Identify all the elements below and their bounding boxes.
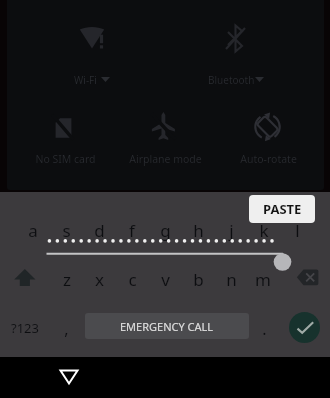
button[interactable]: PASTE xyxy=(249,195,315,223)
button[interactable]: . xyxy=(248,316,280,342)
button[interactable]: Wi-Fi xyxy=(68,70,115,90)
button[interactable] xyxy=(127,100,217,166)
staticText: b xyxy=(193,268,204,291)
button[interactable]: a xyxy=(17,217,49,243)
button[interactable]: g xyxy=(149,217,181,243)
staticText: f xyxy=(129,219,135,242)
button[interactable]: c xyxy=(116,266,148,292)
button[interactable]: d xyxy=(83,217,115,243)
button[interactable]: s xyxy=(50,217,82,243)
button[interactable]: Airplane mode xyxy=(95,150,235,168)
button[interactable]: Done xyxy=(289,312,320,343)
staticText: z xyxy=(63,268,71,291)
button[interactable] xyxy=(232,100,322,166)
staticText: EMERGENCY CALL xyxy=(120,319,214,334)
staticText: Airplane mode xyxy=(129,152,202,166)
button[interactable]: EMERGENCY CALL xyxy=(85,313,249,339)
button[interactable]: l xyxy=(281,217,313,243)
button[interactable]: No SIM card xyxy=(7,150,135,168)
button[interactable]: ?123 xyxy=(9,315,41,341)
staticText: d xyxy=(94,219,105,242)
staticText: Bluetooth xyxy=(208,73,255,87)
staticText: . xyxy=(262,318,267,340)
button[interactable]: k xyxy=(248,217,280,243)
staticText: , xyxy=(64,318,69,340)
staticText: PASTE xyxy=(263,200,302,218)
staticText: n xyxy=(226,268,237,291)
button[interactable]: f xyxy=(116,217,148,243)
staticText: s xyxy=(62,219,71,242)
button[interactable]: x xyxy=(83,266,115,292)
staticText: Auto-rotate xyxy=(240,152,297,166)
button[interactable]: z xyxy=(51,266,83,292)
staticText: k xyxy=(259,219,269,242)
staticText: c xyxy=(128,268,137,291)
button[interactable]: Shift xyxy=(10,265,40,291)
button[interactable]: Bluetooth xyxy=(202,70,270,90)
button[interactable] xyxy=(212,15,272,91)
button[interactable]: b xyxy=(182,266,214,292)
button[interactable]: Backspace xyxy=(294,267,322,289)
staticText: l xyxy=(295,219,300,242)
staticText: j xyxy=(229,219,234,242)
button[interactable]: Auto-rotate xyxy=(198,150,324,168)
staticText: ?123 xyxy=(11,319,39,337)
staticText: x xyxy=(95,268,104,291)
button[interactable]: n xyxy=(215,266,247,292)
staticText: g xyxy=(160,219,171,242)
button[interactable] xyxy=(27,100,117,166)
button[interactable]: h xyxy=(182,217,214,243)
button[interactable] xyxy=(62,15,137,91)
button[interactable]: j xyxy=(215,217,247,243)
staticText: No SIM card xyxy=(35,152,96,166)
button[interactable]: m xyxy=(247,266,279,292)
button[interactable]: v xyxy=(149,266,181,292)
button[interactable]: Hide keyboard xyxy=(52,365,86,391)
staticText: h xyxy=(193,219,204,242)
staticText: a xyxy=(28,219,38,242)
staticText: v xyxy=(161,268,170,291)
staticText: m xyxy=(255,268,271,291)
staticText: Wi-Fi xyxy=(74,73,97,87)
